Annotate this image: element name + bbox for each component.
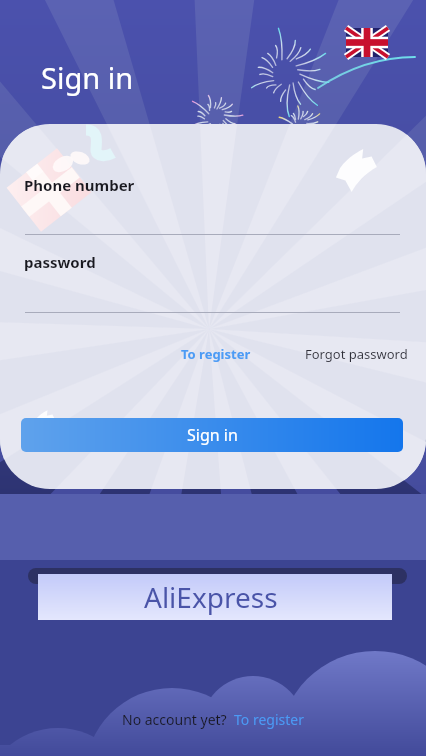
button[interactable]: Sign in xyxy=(21,418,403,452)
button[interactable]: Forgot password xyxy=(305,345,408,363)
staticText: No account yet? xyxy=(122,710,227,729)
staticText: Sign in xyxy=(187,424,238,446)
staticText: password xyxy=(24,252,96,272)
button[interactable]: To register xyxy=(181,345,251,363)
staticText: To register xyxy=(181,345,251,363)
staticText: AliExpress xyxy=(144,578,278,616)
button[interactable]: To register xyxy=(234,710,304,729)
button[interactable]: AliExpress xyxy=(38,574,392,620)
staticText: Phone number xyxy=(24,175,135,195)
staticText: Sign in xyxy=(41,58,134,97)
button[interactable]: Change language xyxy=(346,28,388,57)
staticText: Forgot password xyxy=(305,345,408,363)
staticText: To register xyxy=(234,710,304,729)
